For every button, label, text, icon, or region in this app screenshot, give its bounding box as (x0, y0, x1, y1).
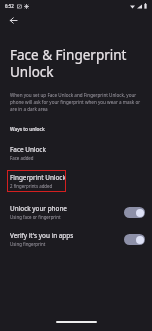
button[interactable]: Unlock your phone (0, 204, 152, 220)
staticText: 2 fingerprints added (10, 183, 53, 189)
button[interactable]: Fingerprint Unlock (7, 170, 66, 192)
staticText: Using fingerprint (10, 241, 46, 247)
staticText: Face Unlock (10, 145, 46, 154)
button[interactable]: Verify it's you in apps (0, 231, 152, 247)
staticText: Fingerprint Unlock (10, 173, 66, 182)
staticText: Face added (10, 155, 34, 161)
staticText: Ways to unlock (10, 126, 144, 133)
staticText: Verify it's you in apps (10, 231, 74, 240)
button[interactable]: Toggle (124, 234, 145, 245)
staticText: When you set up Face Unlock and Fingerpr… (10, 92, 144, 112)
button[interactable]: Face Unlock (0, 145, 152, 161)
button[interactable]: Toggle (124, 207, 145, 218)
staticText: 6:52 (5, 3, 14, 9)
staticText: Unlock your phone (10, 204, 67, 213)
staticText: Using face or fingerprint (10, 214, 61, 220)
staticText: Face & Fingerprint Unlock (10, 46, 130, 81)
button[interactable]: Back (5, 12, 22, 29)
